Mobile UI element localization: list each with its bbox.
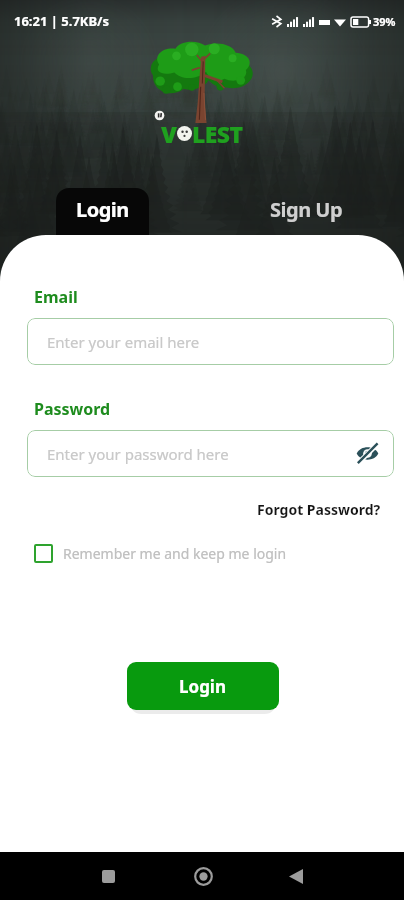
staticText: 39% xyxy=(373,14,396,29)
staticText: Sign Up xyxy=(270,196,343,223)
staticText: Forgot Password? xyxy=(257,500,381,519)
button[interactable]: Back xyxy=(274,854,318,898)
staticText: Remember me and keep me login xyxy=(63,544,287,563)
button[interactable]: Home xyxy=(181,854,225,898)
staticText: Enter your password here xyxy=(47,444,229,464)
button[interactable]: Sign Up xyxy=(249,188,359,236)
button[interactable]: Enter your email here xyxy=(27,318,394,365)
staticText: Email xyxy=(34,286,78,308)
staticText: Enter your email here xyxy=(47,332,200,352)
staticText: 16:21 | 5.7KB/s xyxy=(14,12,110,30)
staticText: LEST xyxy=(192,118,243,149)
button[interactable]: Login xyxy=(127,662,279,710)
button[interactable]: Show password xyxy=(350,436,385,471)
staticText: Login xyxy=(76,196,129,223)
button[interactable]: Login xyxy=(56,188,149,236)
button[interactable]: Forgot Password? xyxy=(257,500,381,519)
staticText: Password xyxy=(34,398,111,420)
staticText: Login xyxy=(179,675,227,698)
button[interactable]: Remember me and keep me login xyxy=(34,544,287,563)
staticText: V xyxy=(161,118,177,149)
button[interactable]: Enter your password here xyxy=(27,430,394,477)
button[interactable]: Recents xyxy=(86,854,130,898)
